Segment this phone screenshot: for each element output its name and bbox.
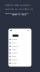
button[interactable] <box>9 55 30 58</box>
button[interactable] <box>9 58 30 62</box>
button[interactable] <box>9 48 30 51</box>
button[interactable] <box>9 38 30 41</box>
staticText: SUPPORT EVERY MOMENT <box>5 4 30 6</box>
staticText: AND STAY IN CONTROL OF <box>5 8 33 10</box>
staticText: EVERYTHING YOU OWN <box>5 12 29 14</box>
staticText: WITH A TAP. <box>11 13 26 16</box>
button[interactable] <box>9 45 30 48</box>
button[interactable] <box>9 51 30 55</box>
button[interactable] <box>9 41 30 45</box>
button[interactable] <box>9 62 30 65</box>
button[interactable]: WITH A TAP. <box>11 13 27 15</box>
